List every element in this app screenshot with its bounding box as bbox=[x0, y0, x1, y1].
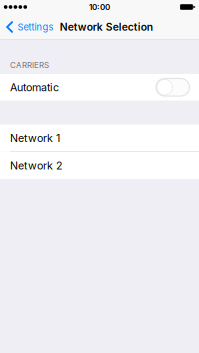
button[interactable]: Settings bbox=[0, 14, 57, 40]
button[interactable]: Automatic bbox=[0, 74, 199, 100]
staticText: CARRIERS bbox=[10, 60, 49, 70]
button[interactable]: Network 1 bbox=[0, 124, 199, 151]
staticText: Automatic bbox=[10, 81, 59, 94]
staticText: 10:00 bbox=[89, 2, 110, 12]
staticText: Network Selection bbox=[60, 21, 153, 33]
staticText: Network 1 bbox=[10, 131, 60, 144]
button[interactable]: Network 2 bbox=[0, 152, 199, 179]
staticText: Settings bbox=[17, 21, 53, 33]
staticText: Network 2 bbox=[10, 159, 63, 172]
